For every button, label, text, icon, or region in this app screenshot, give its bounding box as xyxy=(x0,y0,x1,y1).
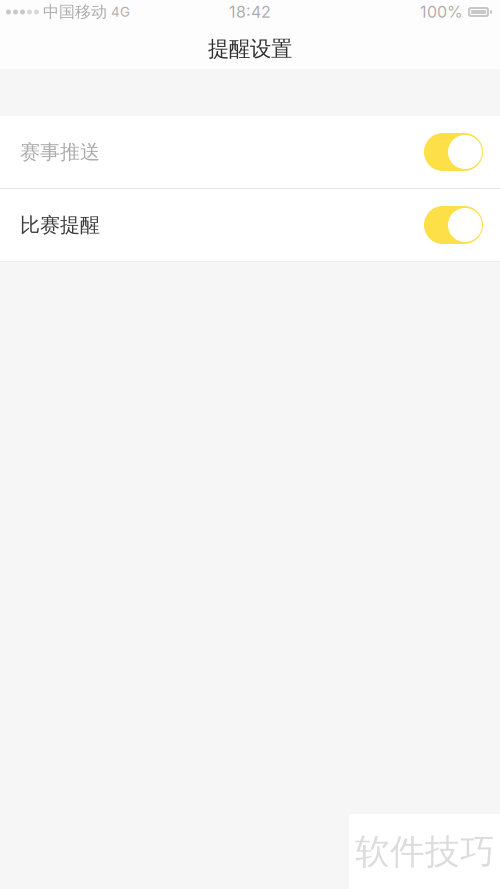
staticText: 中国移动 xyxy=(43,2,107,22)
staticText: 18:42 xyxy=(229,2,271,22)
staticText: 比赛提醒 xyxy=(20,212,100,238)
button[interactable]: 赛事推送 xyxy=(0,116,500,188)
staticText: 4G xyxy=(111,4,130,20)
button[interactable]: 比赛提醒 xyxy=(0,189,500,261)
staticText: 软件技巧 xyxy=(355,830,495,874)
staticText: 100% xyxy=(420,2,463,22)
staticText: 赛事推送 xyxy=(20,139,100,165)
staticText: 提醒设置 xyxy=(208,36,292,62)
